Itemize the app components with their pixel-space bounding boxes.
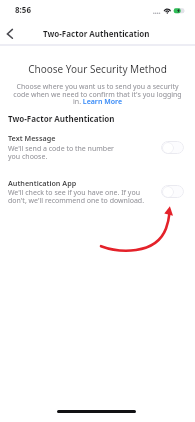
staticText: Choose Your Security Method [0,62,195,76]
staticText: Choose where you want us to send you a s… [10,82,185,106]
button[interactable]: Back [0,22,24,45]
staticText: We'll send a code to the number you choo… [8,144,114,161]
staticText: Two-Factor Authentication [8,113,115,124]
staticText: 8:56 [15,4,31,15]
staticText: Two-Factor Authentication [43,28,150,39]
button[interactable]: Toggle [161,141,184,154]
staticText: Authentication App [8,178,77,188]
button[interactable]: Toggle [161,185,184,198]
staticText: Text Message [8,133,56,143]
staticText: We'll check to see if you have one. If y… [8,188,145,205]
